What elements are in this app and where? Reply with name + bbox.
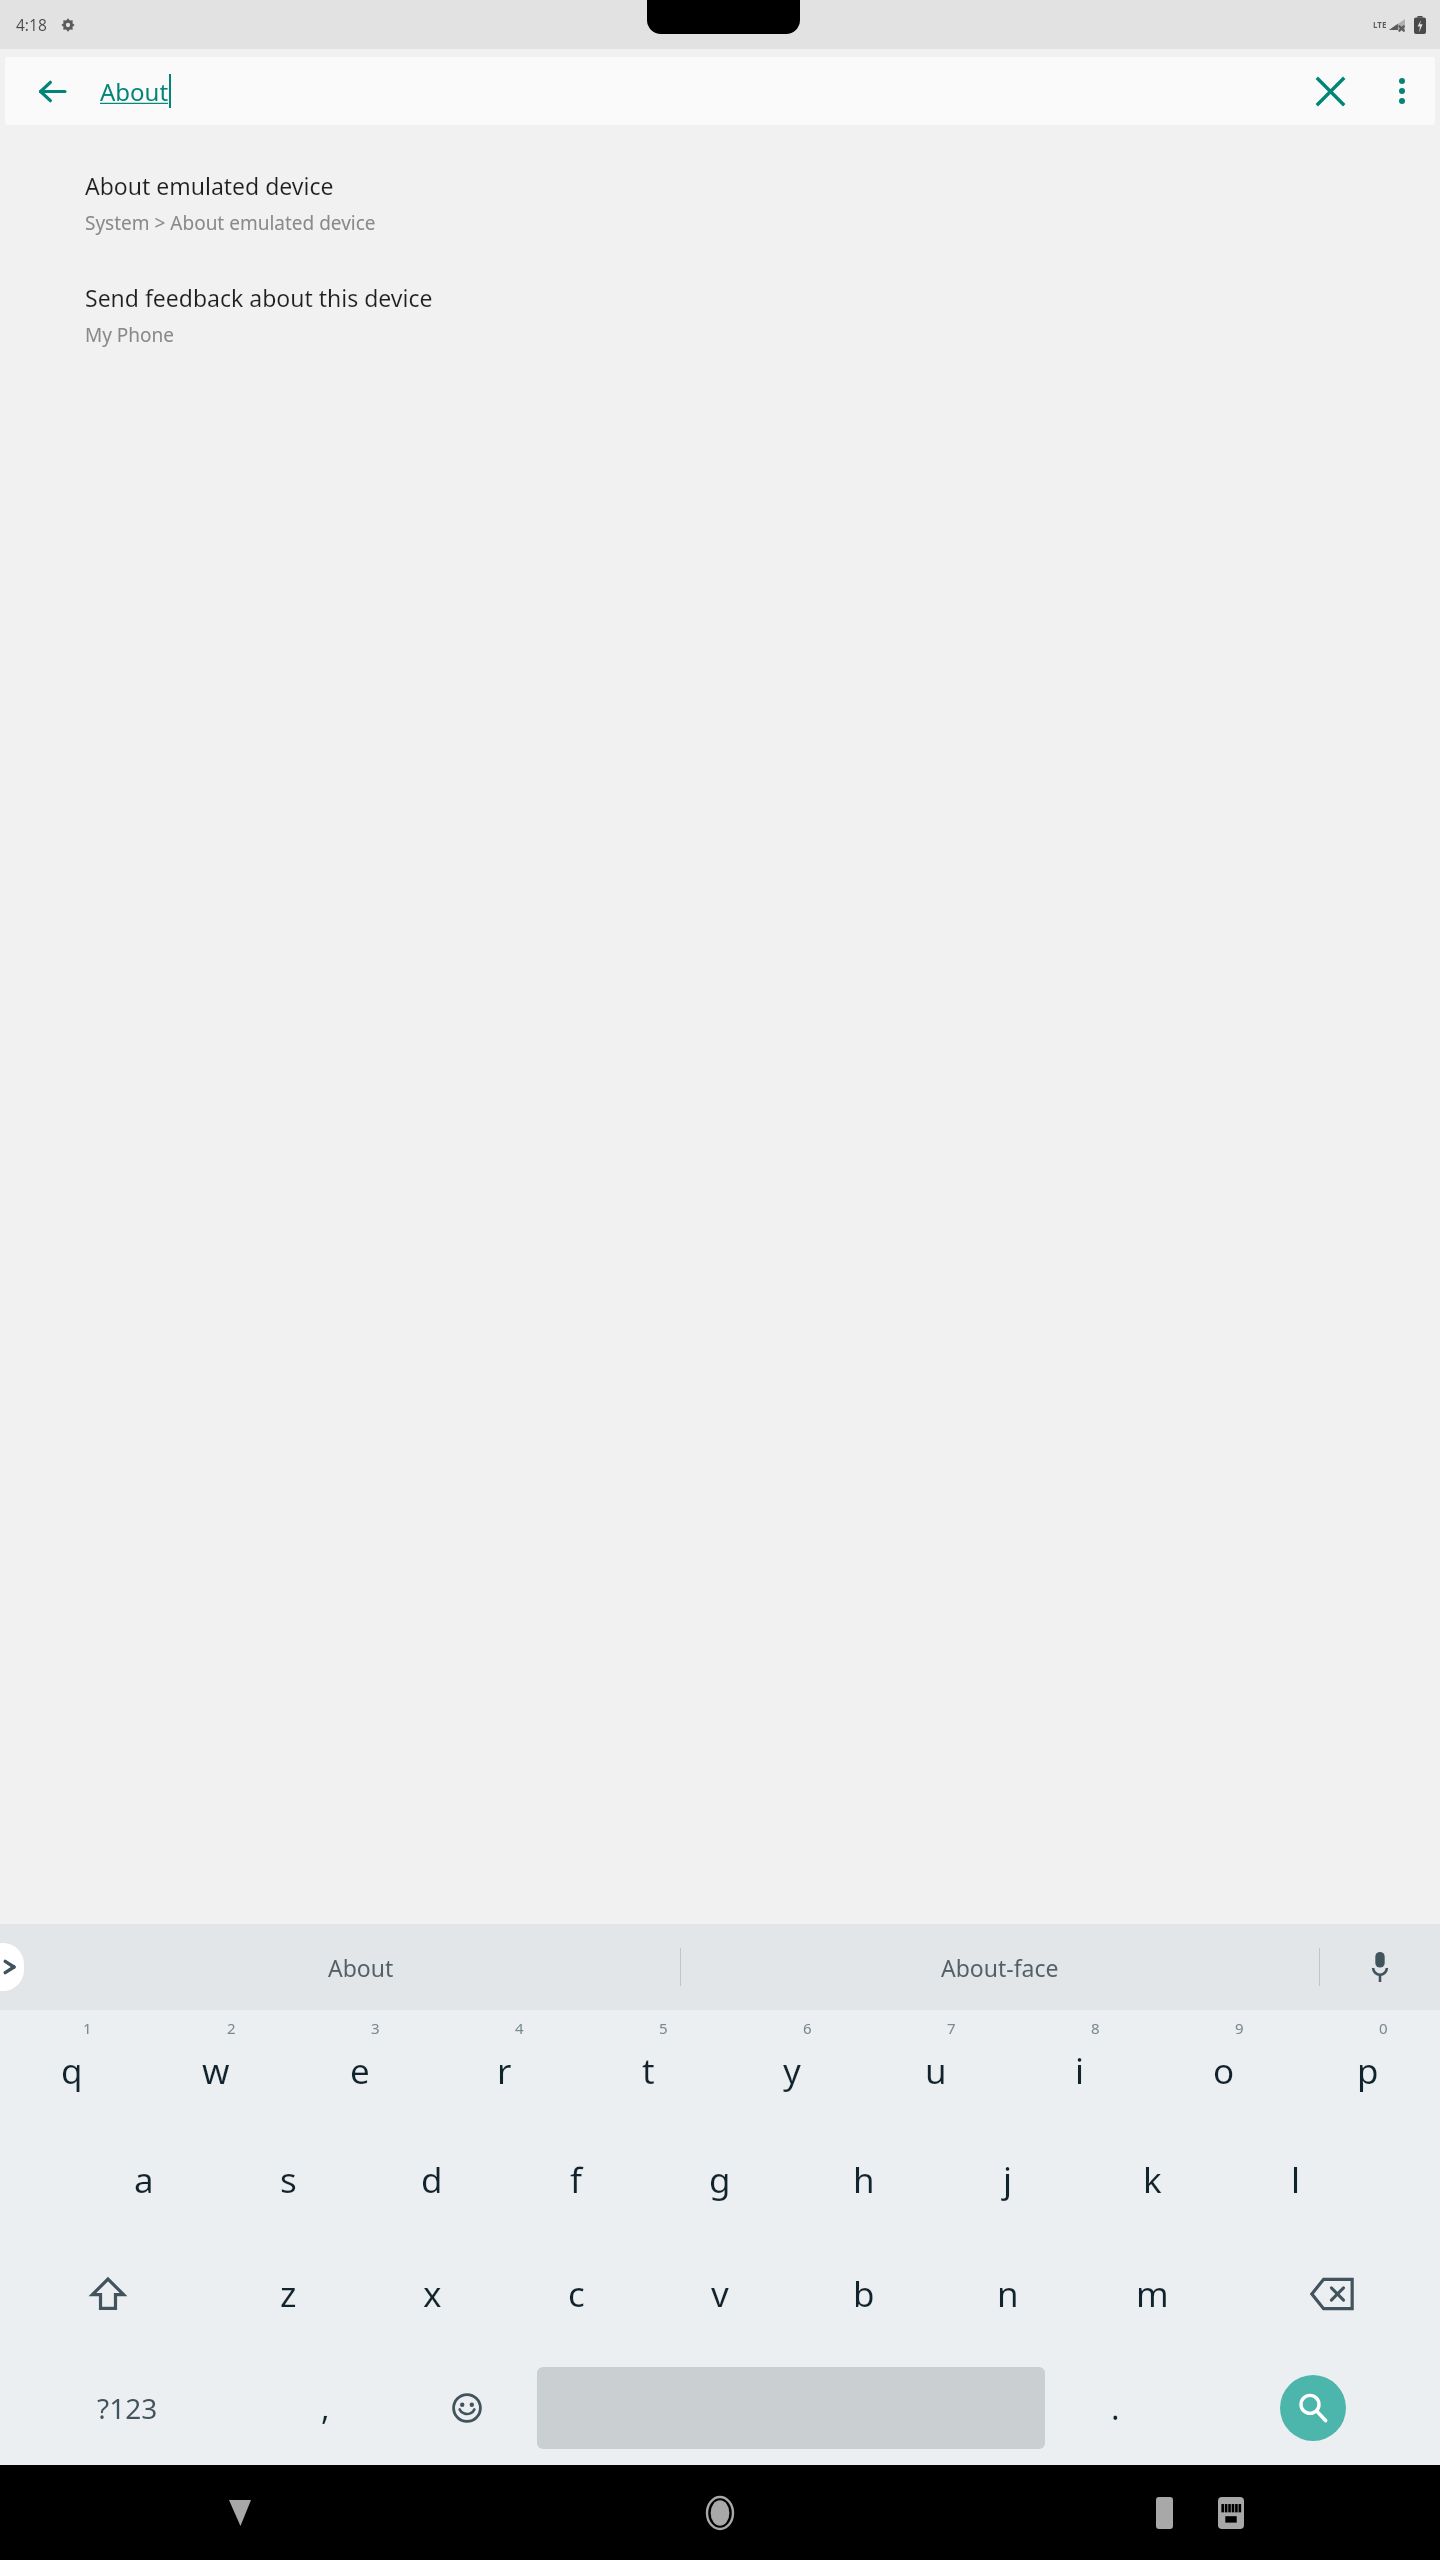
button[interactable]: Recents xyxy=(960,2465,1440,2560)
staticText: h xyxy=(853,2156,875,2204)
button[interactable]: Home xyxy=(480,2465,960,2560)
button[interactable]: Search xyxy=(1186,2351,1440,2465)
staticText: 2 xyxy=(227,2018,236,2038)
staticText: System > About emulated device xyxy=(85,210,376,236)
button[interactable]: x xyxy=(360,2237,504,2351)
staticText: w xyxy=(202,2047,230,2095)
button[interactable]: 3 xyxy=(288,2010,432,2123)
button[interactable]: About xyxy=(42,1924,680,2010)
staticText: . xyxy=(1111,2386,1120,2430)
button[interactable]: a xyxy=(72,2123,216,2237)
staticText: 3 xyxy=(371,2018,380,2038)
button[interactable]: Back xyxy=(5,57,100,125)
button[interactable]: z xyxy=(216,2237,360,2351)
button[interactable]: h xyxy=(792,2123,936,2237)
button[interactable]: d xyxy=(360,2123,504,2237)
button[interactable]: Backspace xyxy=(1224,2237,1440,2351)
staticText: ?123 xyxy=(97,2389,158,2427)
button[interactable]: Voice input xyxy=(1320,1924,1440,2010)
staticText: j xyxy=(1003,2156,1013,2204)
staticText: LTE xyxy=(1373,19,1387,30)
staticText: k xyxy=(1143,2156,1162,2204)
staticText: 4:18 xyxy=(16,14,47,35)
button[interactable]: Expand suggestions xyxy=(0,1943,24,1991)
button[interactable]: Send feedback about this device xyxy=(0,282,1440,348)
staticText: t xyxy=(642,2047,655,2095)
staticText: Send feedback about this device xyxy=(85,282,433,313)
staticText: p xyxy=(1357,2047,1379,2095)
staticText: r xyxy=(497,2047,512,2095)
staticText: n xyxy=(997,2270,1019,2318)
staticText: x xyxy=(423,2270,442,2318)
staticText: f xyxy=(570,2156,583,2204)
staticText: u xyxy=(925,2047,947,2095)
button[interactable]: Emoji xyxy=(396,2351,537,2465)
staticText: About-face xyxy=(941,1952,1059,1983)
button[interactable]: g xyxy=(648,2123,792,2237)
staticText: b xyxy=(853,2270,875,2318)
staticText: o xyxy=(1213,2047,1235,2095)
staticText: z xyxy=(280,2270,297,2318)
button[interactable]: 6 xyxy=(720,2010,864,2123)
button[interactable]: n xyxy=(936,2237,1080,2351)
staticText: 6 xyxy=(803,2018,812,2038)
staticText: 8 xyxy=(1091,2018,1100,2038)
button[interactable]: 9 xyxy=(1152,2010,1296,2123)
staticText: q xyxy=(61,2047,83,2095)
staticText: g xyxy=(709,2156,731,2204)
staticText: s xyxy=(280,2156,297,2204)
staticText: About xyxy=(100,75,169,108)
button[interactable]: 0 xyxy=(1296,2010,1440,2123)
button[interactable]: About-face xyxy=(681,1924,1319,2010)
staticText: d xyxy=(421,2156,443,2204)
button[interactable]: c xyxy=(504,2237,648,2351)
staticText: My Phone xyxy=(85,322,175,348)
button[interactable]: Back xyxy=(0,2465,480,2560)
button[interactable]: j xyxy=(936,2123,1080,2237)
button[interactable]: f xyxy=(504,2123,648,2237)
button[interactable]: v xyxy=(648,2237,792,2351)
staticText: 0 xyxy=(1379,2018,1388,2038)
staticText: e xyxy=(350,2047,370,2095)
button[interactable]: About emulated device xyxy=(0,170,1440,236)
staticText: 4 xyxy=(515,2018,524,2038)
button[interactable]: . xyxy=(1045,2351,1186,2465)
button[interactable]: Clear xyxy=(1291,57,1369,125)
staticText: l xyxy=(1291,2156,1301,2204)
staticText: 5 xyxy=(659,2018,668,2038)
staticText: , xyxy=(321,2386,330,2430)
button[interactable]: m xyxy=(1080,2237,1224,2351)
button[interactable]: l xyxy=(1224,2123,1368,2237)
staticText: About emulated device xyxy=(85,170,334,201)
button[interactable]: k xyxy=(1080,2123,1224,2237)
staticText: i xyxy=(1075,2047,1085,2095)
button[interactable]: More options xyxy=(1369,57,1435,125)
button[interactable]: Shift xyxy=(0,2237,216,2351)
staticText: a xyxy=(134,2156,154,2204)
staticText: About xyxy=(328,1952,394,1983)
button[interactable]: 4 xyxy=(432,2010,576,2123)
button[interactable]: 5 xyxy=(576,2010,720,2123)
button[interactable]: 7 xyxy=(864,2010,1008,2123)
button[interactable]: 2 xyxy=(144,2010,288,2123)
staticText: m xyxy=(1136,2270,1169,2318)
button[interactable]: , xyxy=(255,2351,396,2465)
staticText: 1 xyxy=(83,2018,92,2038)
staticText: 9 xyxy=(1235,2018,1244,2038)
button[interactable]: b xyxy=(792,2237,936,2351)
staticText: 7 xyxy=(947,2018,956,2038)
staticText: v xyxy=(711,2270,729,2318)
button[interactable]: s xyxy=(216,2123,360,2237)
button[interactable]: 1 xyxy=(0,2010,144,2123)
staticText: y xyxy=(783,2047,801,2095)
staticText: c xyxy=(568,2270,585,2318)
button[interactable]: 8 xyxy=(1008,2010,1152,2123)
button[interactable]: ?123 xyxy=(0,2351,255,2465)
